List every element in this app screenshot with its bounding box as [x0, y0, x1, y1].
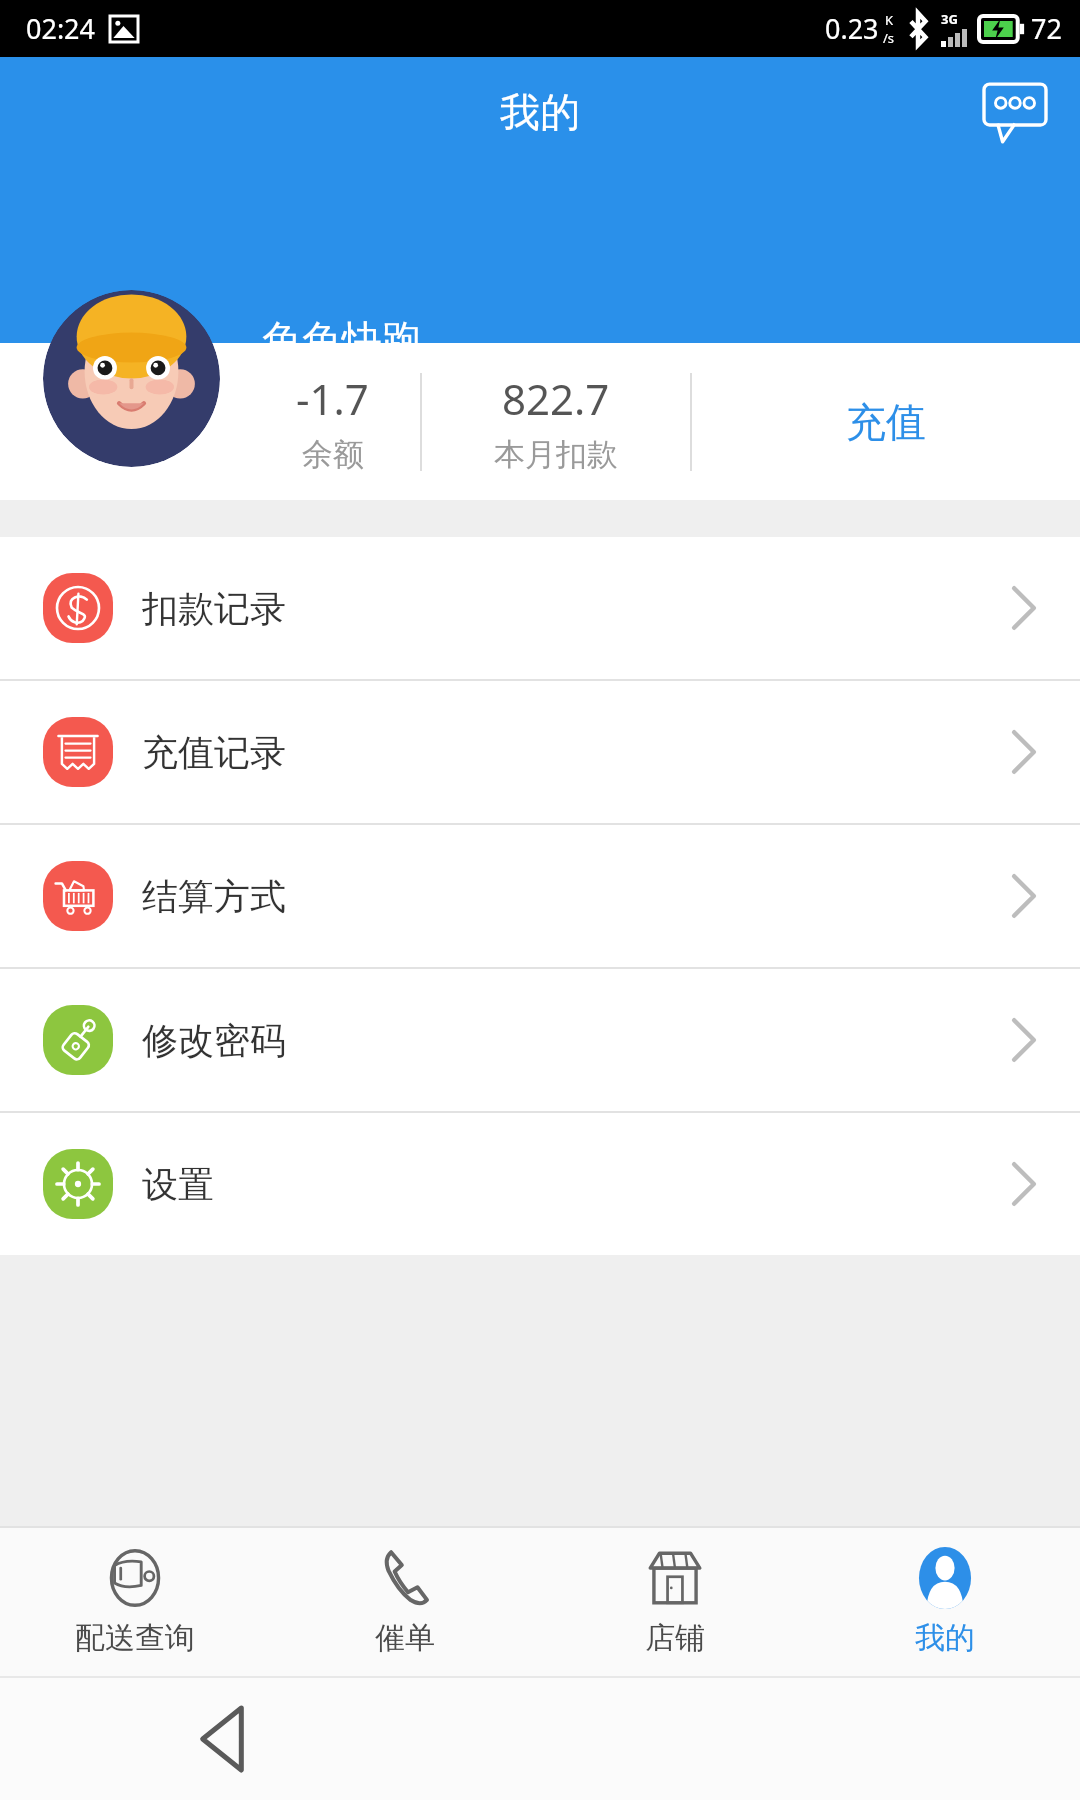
button[interactable]: 充值	[692, 343, 1080, 500]
staticText: 催单	[375, 1619, 435, 1657]
staticText: 配送查询	[75, 1619, 195, 1657]
staticText: 余额	[302, 435, 364, 474]
button[interactable]: 充值记录	[0, 681, 1080, 823]
staticText: K	[885, 11, 894, 29]
staticText: 扣款记录	[142, 586, 286, 631]
staticText: 822.7	[502, 370, 610, 427]
button[interactable]: 配送查询	[0, 1528, 270, 1676]
staticText: 72	[1031, 10, 1062, 47]
staticText: -1.7	[296, 370, 369, 427]
staticText: 我的	[915, 1619, 975, 1657]
button[interactable]: 结算方式	[0, 825, 1080, 967]
button[interactable]: 扣款记录	[0, 537, 1080, 679]
button[interactable]: Messages	[978, 75, 1052, 149]
staticText: /s	[883, 29, 895, 47]
staticText: 充值记录	[142, 730, 286, 775]
button[interactable]: 设置	[0, 1113, 1080, 1255]
staticText: 我的	[500, 87, 580, 137]
staticText: 修改密码	[142, 1018, 286, 1063]
button[interactable]: 修改密码	[0, 969, 1080, 1111]
button[interactable]: 店铺	[540, 1528, 810, 1676]
staticText: 结算方式	[142, 874, 286, 919]
button[interactable]: Profile avatar	[43, 290, 220, 467]
staticText: 本月扣款	[494, 435, 618, 474]
staticText: 3G	[941, 10, 958, 28]
staticText: 店铺	[645, 1619, 705, 1657]
staticText: 0.23	[825, 10, 879, 47]
button[interactable]: Back	[177, 1694, 267, 1784]
staticText: 充值	[846, 397, 926, 447]
staticText: 02:24	[26, 10, 96, 47]
button[interactable]: 我的	[810, 1528, 1080, 1676]
staticText: 设置	[142, 1162, 214, 1207]
staticText: 兔兔快跑	[262, 315, 422, 365]
button[interactable]: 催单	[270, 1528, 540, 1676]
